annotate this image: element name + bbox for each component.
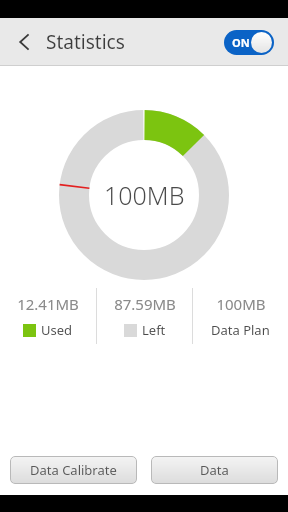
button[interactable]: Data Calibrate [10,456,137,484]
staticText: Left [142,321,166,339]
staticText: 87.59MB [114,294,176,314]
staticText: Data Plan [211,321,270,339]
staticText: Used [41,321,73,339]
staticText: 100MB [104,178,185,212]
staticText: 100MB [216,294,266,314]
button[interactable]: 87.59MB [97,286,192,346]
button[interactable]: Toggle statistics on [224,30,274,55]
staticText: ON [232,35,250,50]
staticText: Statistics [46,29,125,55]
staticText: Data [200,461,229,479]
button[interactable]: Data [151,456,278,484]
button[interactable]: Back [8,25,42,59]
staticText: Data Calibrate [30,461,117,479]
button[interactable]: 12.41MB [0,286,96,346]
button[interactable]: 100MB [193,286,288,346]
staticText: 12.41MB [17,294,79,314]
